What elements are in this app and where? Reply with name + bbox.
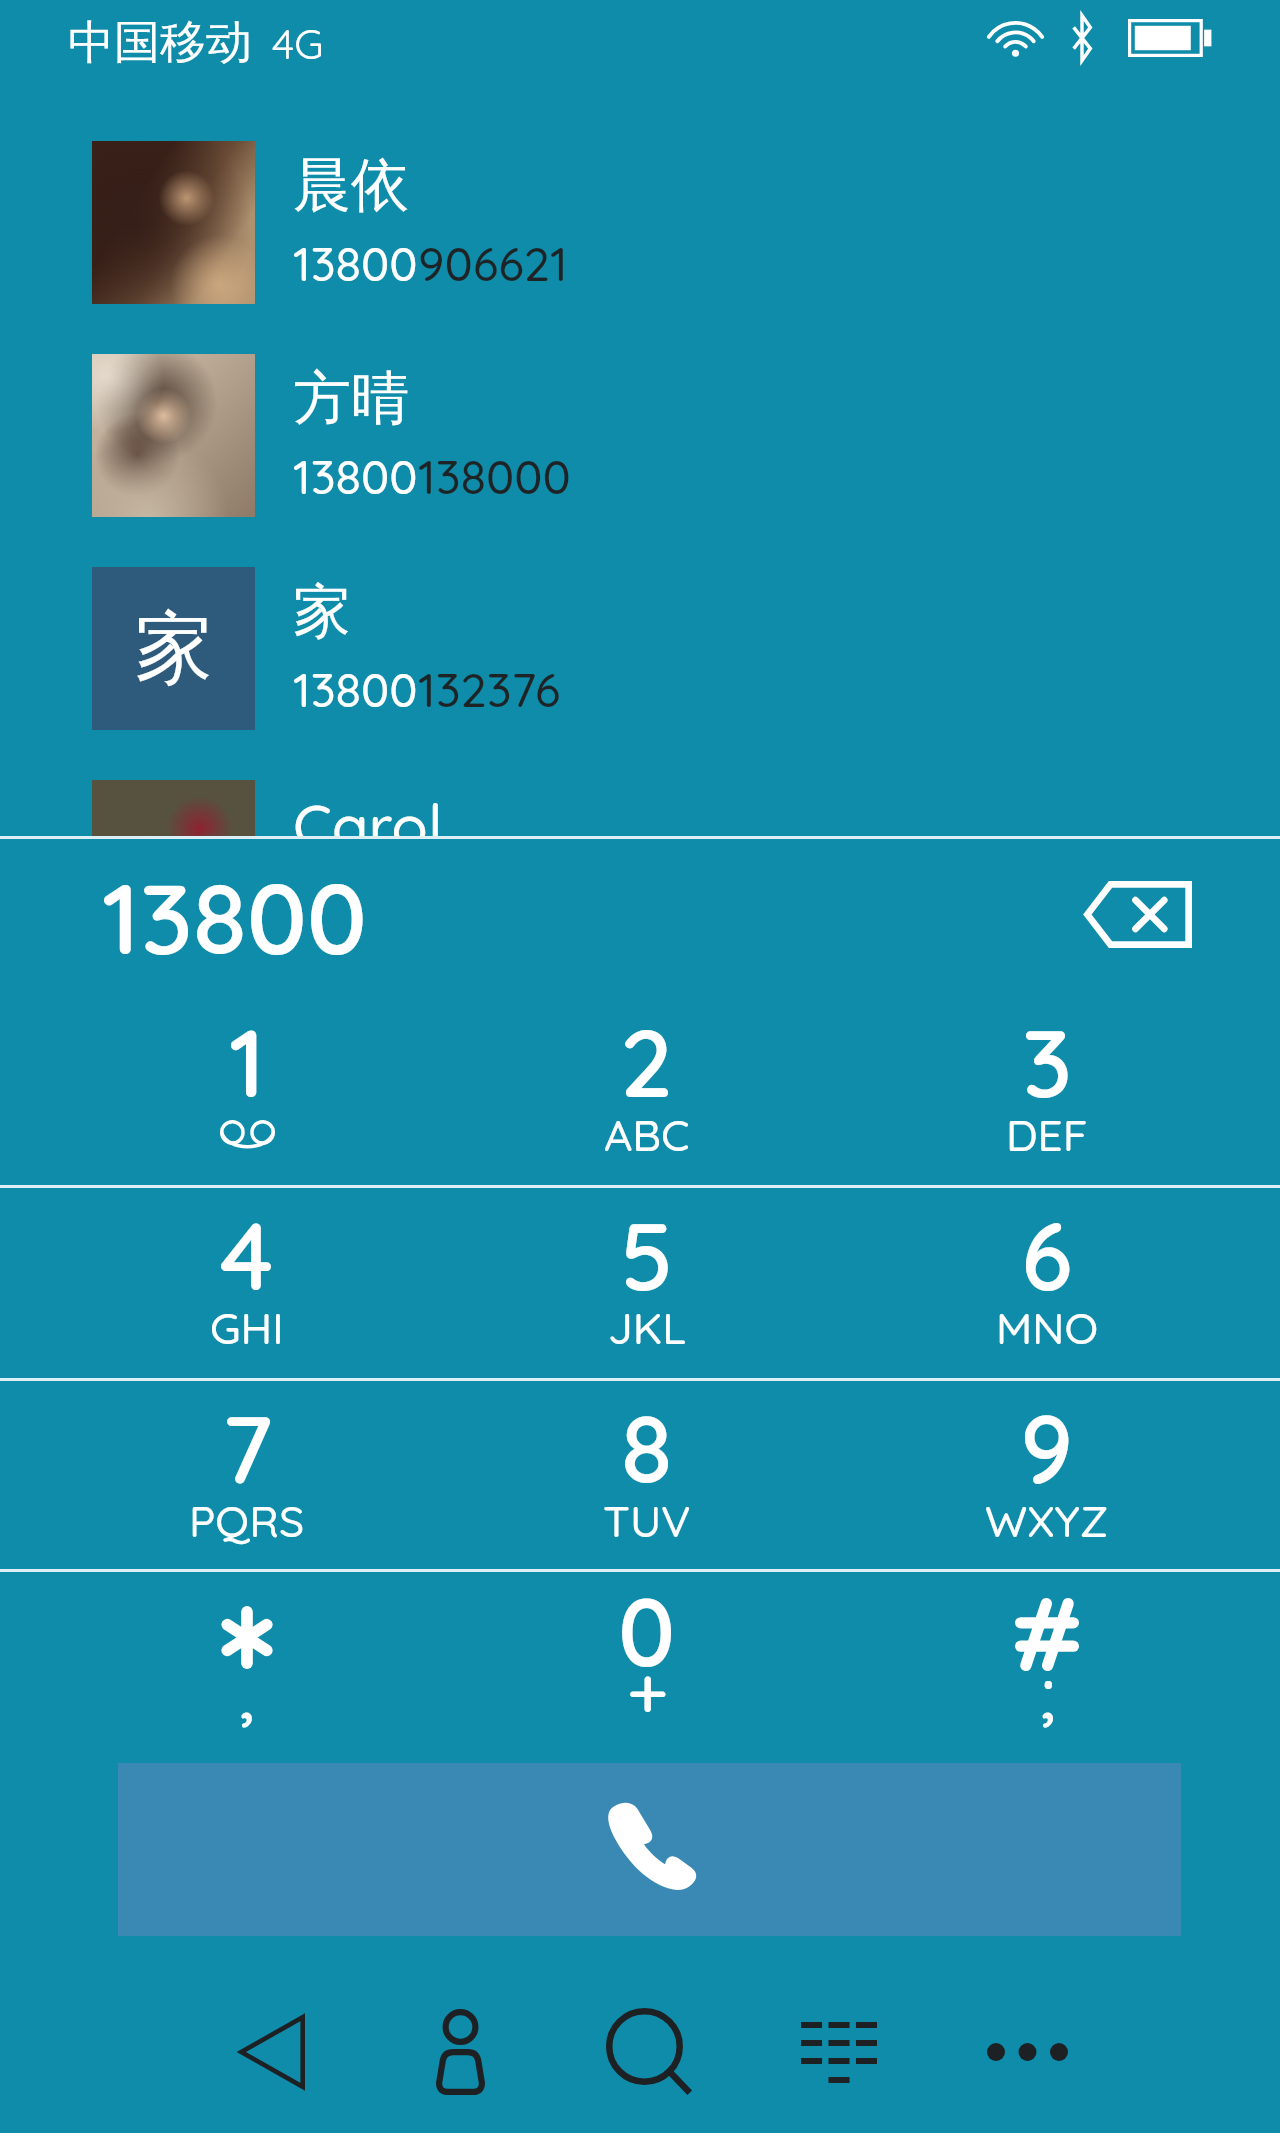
button[interactable]: More [933,1961,1122,2133]
staticText: MNO [996,1300,1098,1355]
staticText: 138000 [418,447,571,506]
staticText: 13800 [293,234,418,293]
button[interactable]: 5 [447,1185,847,1378]
staticText: JKL [608,1300,687,1355]
button[interactable]: 方晴 [0,354,1280,517]
staticText: 13800 [102,855,368,979]
staticText: 家 [135,600,213,698]
button[interactable]: 家 [0,567,1280,730]
button[interactable]: 1 [47,992,447,1185]
staticText: 家 [293,575,351,648]
staticText: 方晴 [293,362,409,435]
button[interactable]: 2 [447,992,847,1185]
staticText: 2 [620,1003,674,1121]
button[interactable]: , [47,1569,447,1762]
button[interactable]: Contacts [366,1961,555,2133]
staticText: 906621 [418,234,568,293]
button[interactable]: 3 [847,992,1247,1185]
staticText: 晨依 [293,149,409,222]
staticText: 132376 [418,660,561,719]
button[interactable]: 6 [847,1185,1247,1378]
staticText: 0 [618,1572,676,1690]
staticText: GHI [210,1300,284,1355]
button[interactable]: Search [555,1961,744,2133]
staticText: 13800 [293,447,418,506]
staticText: , [239,1646,255,1736]
button[interactable]: Dialpad [744,1961,933,2133]
staticText: + [627,1646,668,1736]
staticText: 13800 [293,660,418,719]
staticText: 9 [1020,1389,1074,1507]
button[interactable]: Call [118,1763,1181,1936]
button[interactable]: 0 [447,1569,847,1762]
staticText: 1 [229,1003,266,1121]
button[interactable]: ; [847,1569,1247,1762]
button[interactable]: 7 [47,1378,447,1571]
staticText: 4 [220,1196,274,1314]
staticText: 8 [621,1389,673,1507]
staticText: 5 [620,1196,674,1314]
staticText: TUV [603,1493,691,1548]
staticText: WXYZ [985,1493,1109,1548]
staticText: ABC [604,1107,690,1162]
staticText: 6 [1021,1196,1073,1314]
button[interactable]: Back [177,1961,366,2133]
staticText: 13800 [293,875,418,934]
staticText: DEF [1006,1107,1088,1162]
button[interactable]: 晨依 [0,141,1280,304]
staticText: 7 [222,1389,273,1507]
staticText: Carol [293,788,443,863]
button[interactable]: 8 [447,1378,847,1571]
staticText: PQRS [189,1493,305,1548]
staticText: ; [1039,1646,1056,1736]
staticText: 3 [1022,1003,1073,1121]
button[interactable]: Backspace [1063,862,1213,967]
button[interactable]: 4 [47,1185,447,1378]
button[interactable]: Carol [0,780,1280,943]
button[interactable]: 9 [847,1378,1247,1571]
staticText: 4G [272,17,324,70]
staticText: 中国移动 [68,14,252,72]
